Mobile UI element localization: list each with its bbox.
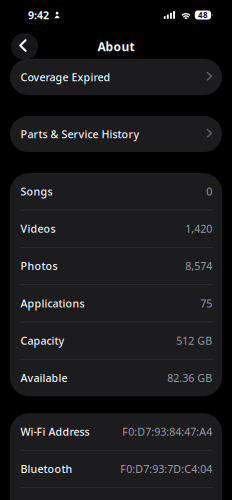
staticText: 0	[206, 184, 212, 198]
button[interactable]: Songs	[10, 173, 222, 210]
button[interactable]: Videos	[10, 210, 222, 247]
staticText: Wi-Fi Address	[20, 424, 89, 439]
staticText: Bluetooth	[20, 462, 72, 476]
staticText: F0:D7:93:84:47:A4	[122, 424, 212, 439]
staticText: Coverage Expired	[20, 70, 110, 84]
staticText: 82.36 GB	[167, 371, 212, 385]
button[interactable]: Photos	[10, 248, 222, 284]
staticText: 48	[198, 10, 208, 20]
button[interactable]: Parts & Service History	[10, 116, 222, 152]
staticText: Photos	[20, 259, 57, 273]
staticText: F0:D7:93:7D:C4:04	[120, 462, 212, 476]
staticText: Parts & Service History	[20, 127, 139, 141]
staticText: 1,420	[185, 222, 212, 236]
staticText: 9:42	[28, 8, 49, 22]
button[interactable]: Capacity	[10, 322, 222, 359]
staticText: Applications	[20, 296, 84, 310]
staticText: About	[97, 38, 134, 54]
staticText: 8,574	[185, 259, 212, 273]
staticText: 75	[200, 296, 212, 310]
button[interactable]: Available	[10, 359, 222, 396]
staticText: 512 GB	[176, 333, 212, 348]
staticText: Capacity	[20, 333, 64, 348]
button[interactable]: Coverage Expired	[10, 59, 222, 95]
button[interactable]: Wi-Fi Address	[10, 413, 222, 450]
staticText: Songs	[20, 184, 52, 198]
staticText: Videos	[20, 222, 55, 236]
button[interactable]: Bluetooth	[10, 450, 222, 487]
button[interactable]: Back	[11, 33, 38, 60]
button[interactable]: Applications	[10, 285, 222, 322]
staticText: Available	[20, 371, 67, 385]
